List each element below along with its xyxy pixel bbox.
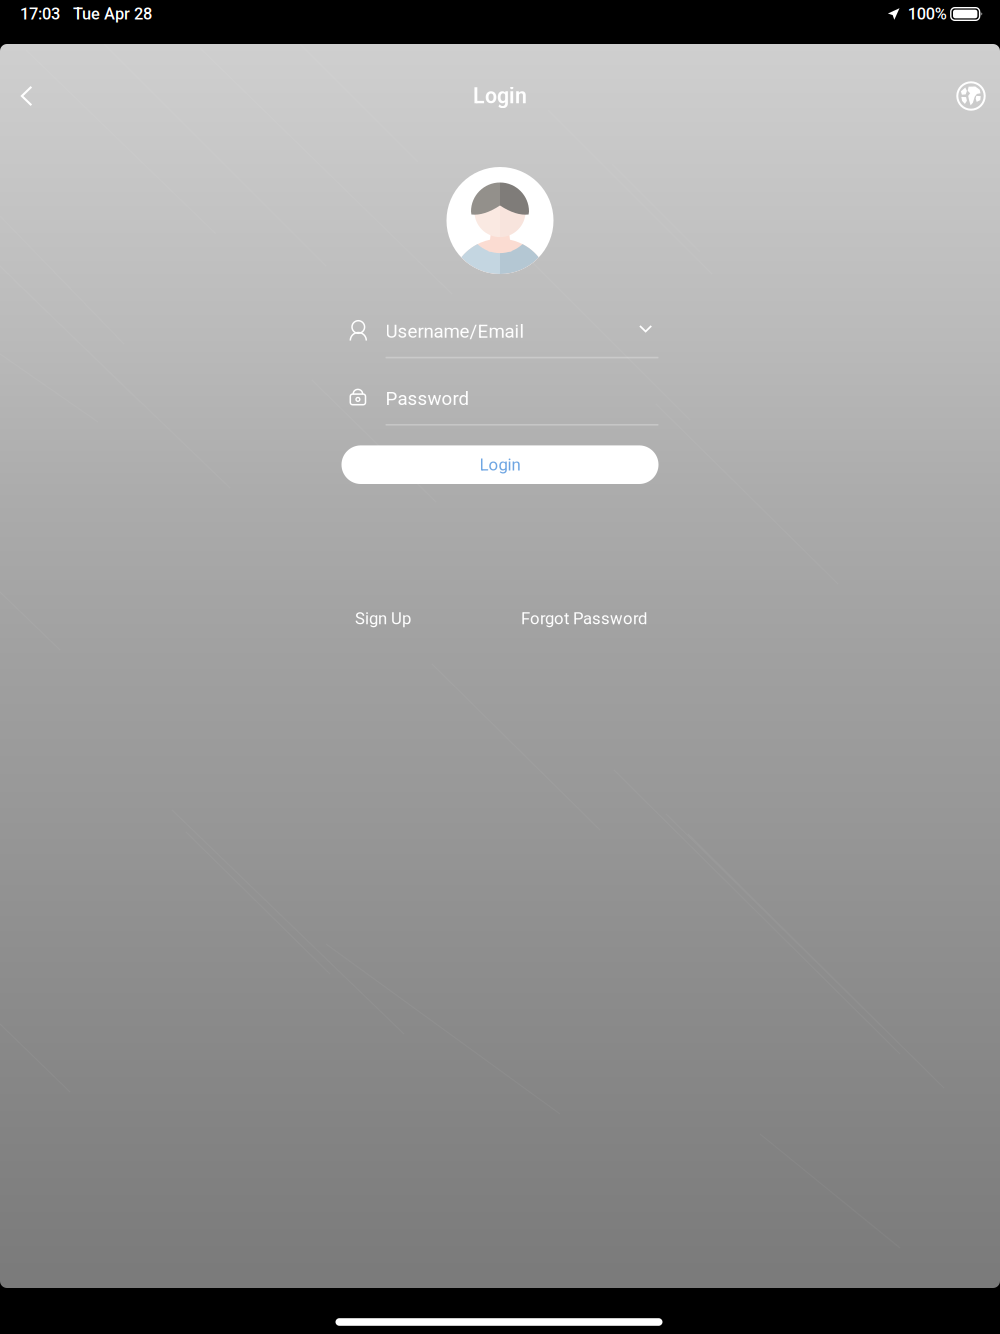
button[interactable]: Login — [341, 445, 658, 484]
staticText: Password — [385, 388, 469, 410]
button[interactable]: Back — [1, 70, 53, 122]
staticText: Forgot Password — [521, 609, 647, 628]
staticText: 17:03 — [20, 4, 60, 24]
button[interactable]: Language — [945, 70, 997, 122]
staticText: Tue Apr 28 — [73, 4, 152, 24]
staticText: 100% — [908, 4, 947, 24]
staticText: Username/Email — [385, 320, 524, 342]
staticText: Login — [473, 83, 527, 108]
staticText: Login — [479, 455, 520, 475]
button[interactable]: Forgot Password — [514, 605, 654, 631]
staticText: Sign Up — [355, 609, 411, 628]
button[interactable]: Sign Up — [345, 605, 421, 631]
